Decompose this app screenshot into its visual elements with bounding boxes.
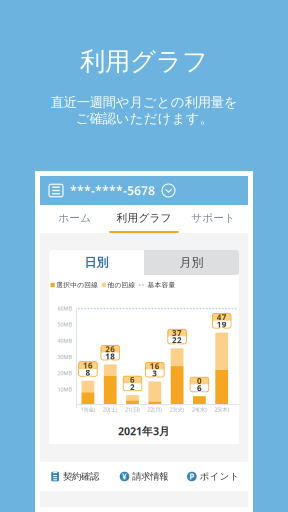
staticText: 20MB	[57, 370, 71, 377]
button[interactable]: 契約確認	[40, 462, 109, 491]
staticText: 選択中の回線	[56, 281, 98, 289]
button[interactable]: Switch line	[155, 184, 175, 197]
staticText: 月別	[179, 255, 203, 270]
staticText: 8	[85, 367, 90, 378]
staticText: 0	[197, 375, 202, 386]
staticText: 21(日)	[125, 406, 140, 413]
staticText: 23(火)	[170, 406, 185, 413]
button[interactable]: ホーム	[40, 205, 109, 233]
staticText: 6	[130, 374, 135, 385]
staticText: 60MB	[57, 305, 71, 312]
staticText: P	[189, 471, 194, 482]
staticText: 2021年3月	[118, 424, 170, 438]
button[interactable]: Menu	[40, 184, 67, 197]
staticText: 16	[83, 360, 93, 371]
staticText: 22(月)	[147, 406, 162, 413]
button[interactable]: P	[179, 462, 248, 491]
staticText: 19	[217, 319, 227, 330]
staticText: 30MB	[57, 353, 71, 360]
staticText: ホーム	[58, 211, 91, 224]
staticText: 6	[197, 383, 202, 393]
button[interactable]: 利用グラフ	[109, 205, 179, 233]
staticText: 18	[105, 351, 115, 362]
staticText: 26	[105, 344, 115, 354]
staticText: ***-****-5678	[70, 182, 155, 198]
staticText: 日別	[84, 255, 108, 270]
staticText: 直近一週間や月ごとの利用量を ご確認いただけます。	[50, 94, 237, 127]
staticText: 37	[172, 328, 182, 338]
staticText: 利用グラフ	[80, 46, 208, 77]
staticText: ¥	[122, 471, 127, 482]
staticText: 2	[130, 382, 135, 392]
staticText: ポイント	[200, 471, 240, 482]
staticText: 25(木)	[214, 406, 229, 413]
button[interactable]: ¥	[109, 462, 179, 491]
staticText: 20(土)	[103, 406, 118, 413]
staticText: 16	[150, 361, 160, 371]
staticText: 40MB	[57, 337, 71, 344]
staticText: 50MB	[57, 321, 71, 328]
staticText: 47	[217, 312, 227, 322]
staticText: 19(金)	[80, 406, 95, 413]
staticText: 22	[172, 335, 182, 345]
button[interactable]: サポート	[179, 205, 248, 233]
staticText: サポート	[191, 211, 235, 224]
staticText: 契約確認	[63, 471, 99, 482]
staticText: 他の回線	[107, 281, 135, 289]
staticText: 利用グラフ	[116, 211, 171, 224]
staticText: 24(水)	[192, 406, 207, 413]
button[interactable]: 日別	[49, 250, 144, 275]
button[interactable]: 月別	[144, 250, 239, 275]
staticText: 10MB	[57, 386, 71, 393]
staticText: 請求情報	[132, 471, 168, 482]
staticText: 3	[152, 368, 157, 379]
staticText: 基本容量	[147, 281, 175, 289]
